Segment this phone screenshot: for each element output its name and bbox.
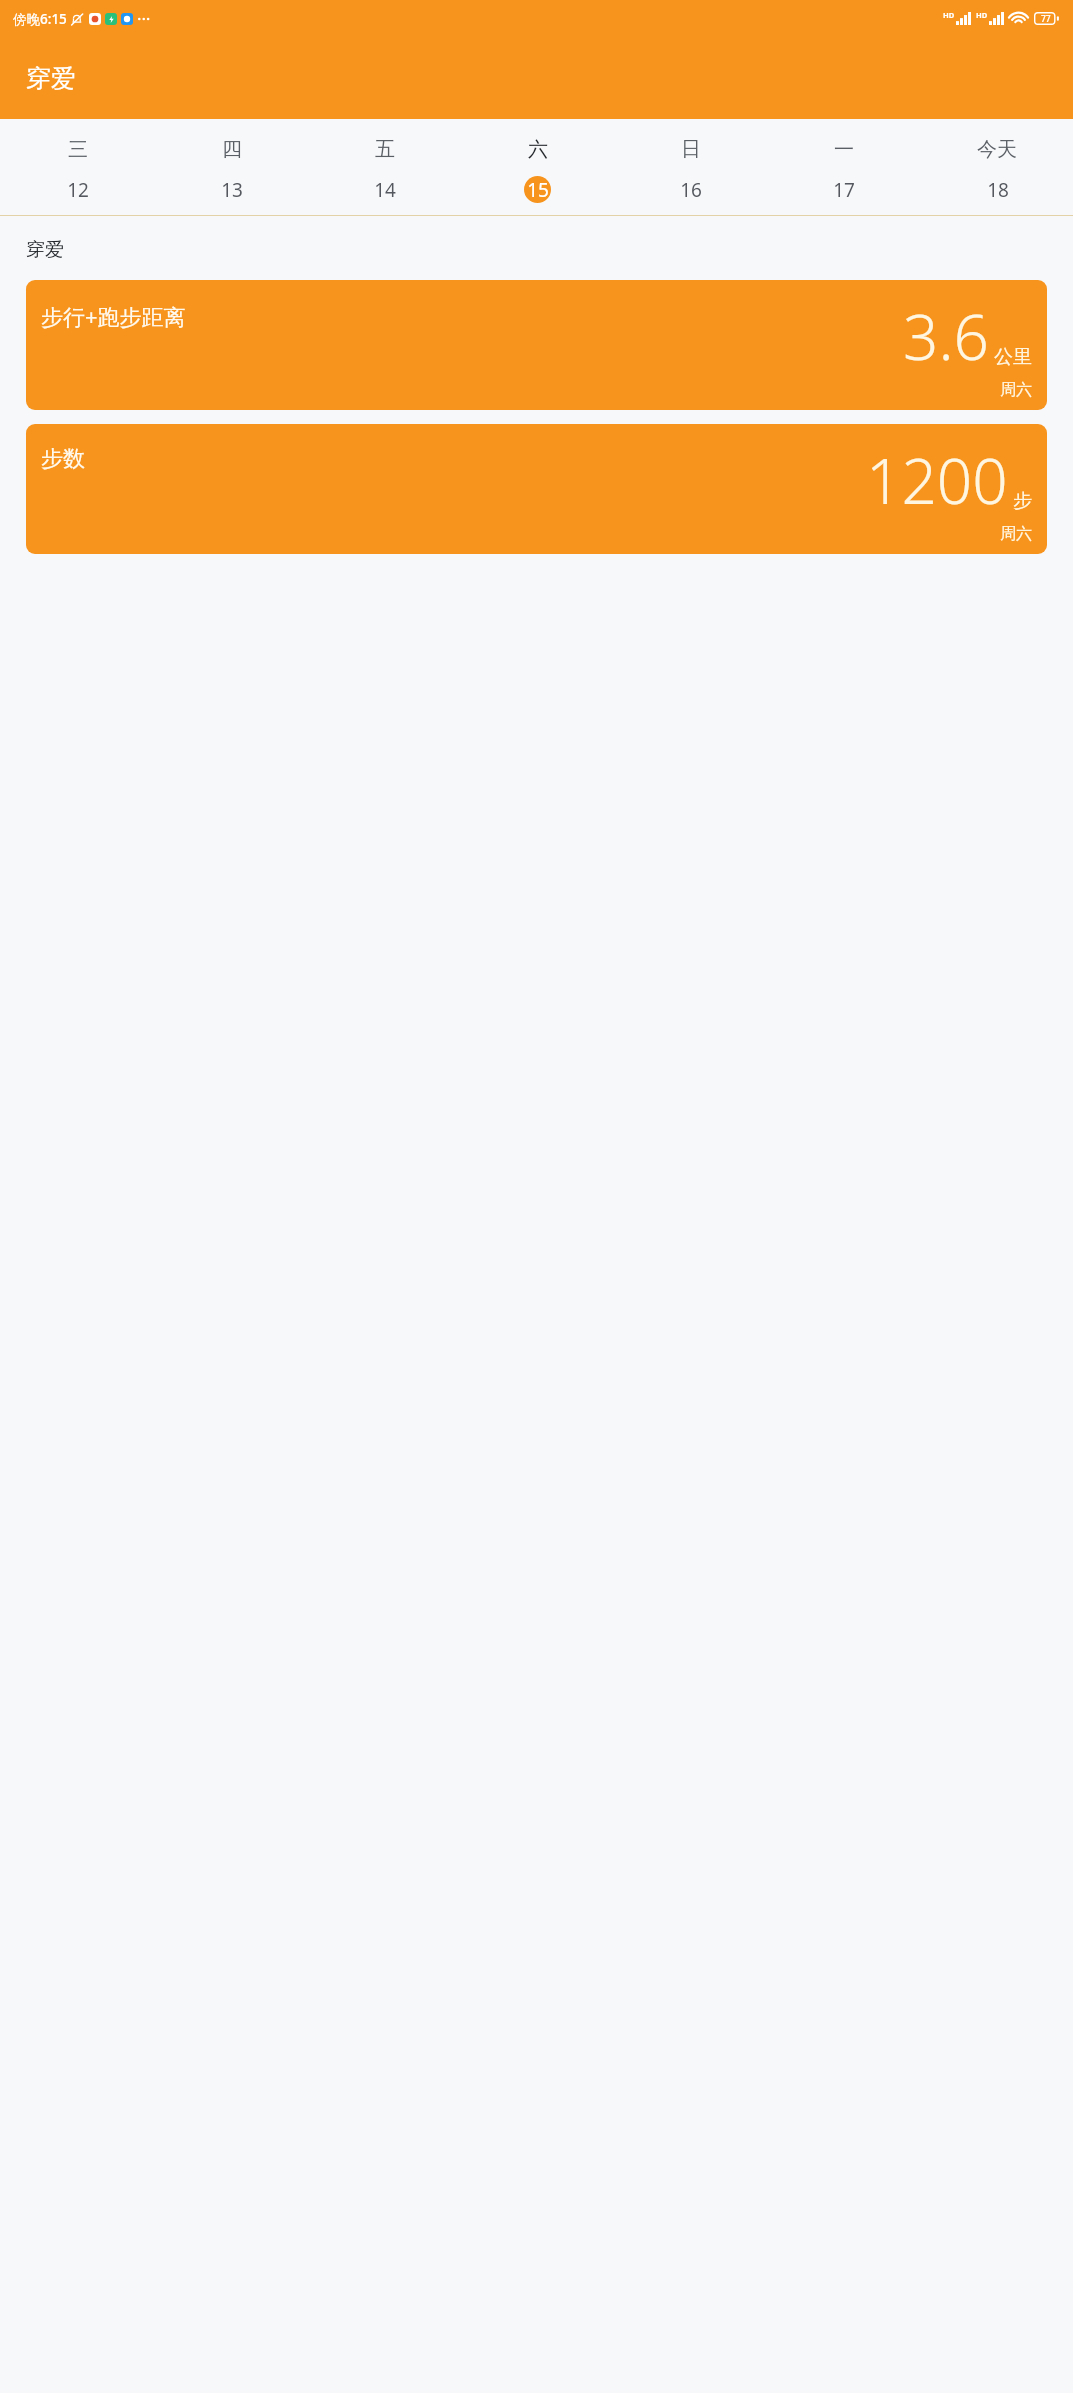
- staticText: 穿爱: [26, 238, 64, 262]
- button[interactable]: 三: [0, 137, 154, 203]
- staticText: 步行+跑步距离: [41, 301, 186, 331]
- button[interactable]: 一: [767, 137, 920, 203]
- staticText: 今天: [977, 137, 1017, 162]
- staticText: 13: [221, 177, 243, 203]
- button[interactable]: 今天: [920, 137, 1073, 203]
- staticText: 步: [1013, 489, 1032, 513]
- button[interactable]: 五: [308, 137, 461, 203]
- staticText: 16: [680, 177, 702, 203]
- staticText: 周六: [1000, 380, 1032, 400]
- staticText: 12: [67, 177, 89, 203]
- staticText: 周六: [1000, 524, 1032, 544]
- staticText: 四: [222, 137, 242, 162]
- staticText: 14: [374, 177, 396, 203]
- staticText: 五: [375, 137, 395, 162]
- button[interactable]: 六: [461, 137, 614, 203]
- staticText: 公里: [994, 345, 1032, 369]
- button[interactable]: 四: [154, 137, 308, 203]
- button[interactable]: 步行+跑步距离: [26, 280, 1047, 410]
- staticText: 日: [681, 137, 701, 162]
- staticText: 一: [834, 137, 854, 162]
- staticText: 3.6: [903, 294, 989, 378]
- staticText: 15: [527, 177, 549, 203]
- staticText: 18: [987, 177, 1009, 203]
- staticText: 六: [528, 137, 548, 162]
- staticText: 三: [68, 137, 88, 162]
- staticText: 穿爱: [26, 63, 76, 94]
- staticText: HD: [976, 10, 988, 20]
- staticText: 17: [833, 177, 855, 203]
- staticText: 77: [1041, 13, 1051, 25]
- button[interactable]: 日: [614, 137, 767, 203]
- staticText: 傍晚6:15: [13, 10, 67, 28]
- staticText: 1200: [866, 438, 1008, 522]
- staticText: 步数: [41, 445, 85, 473]
- button[interactable]: 步数: [26, 424, 1047, 554]
- staticText: HD: [943, 10, 955, 20]
